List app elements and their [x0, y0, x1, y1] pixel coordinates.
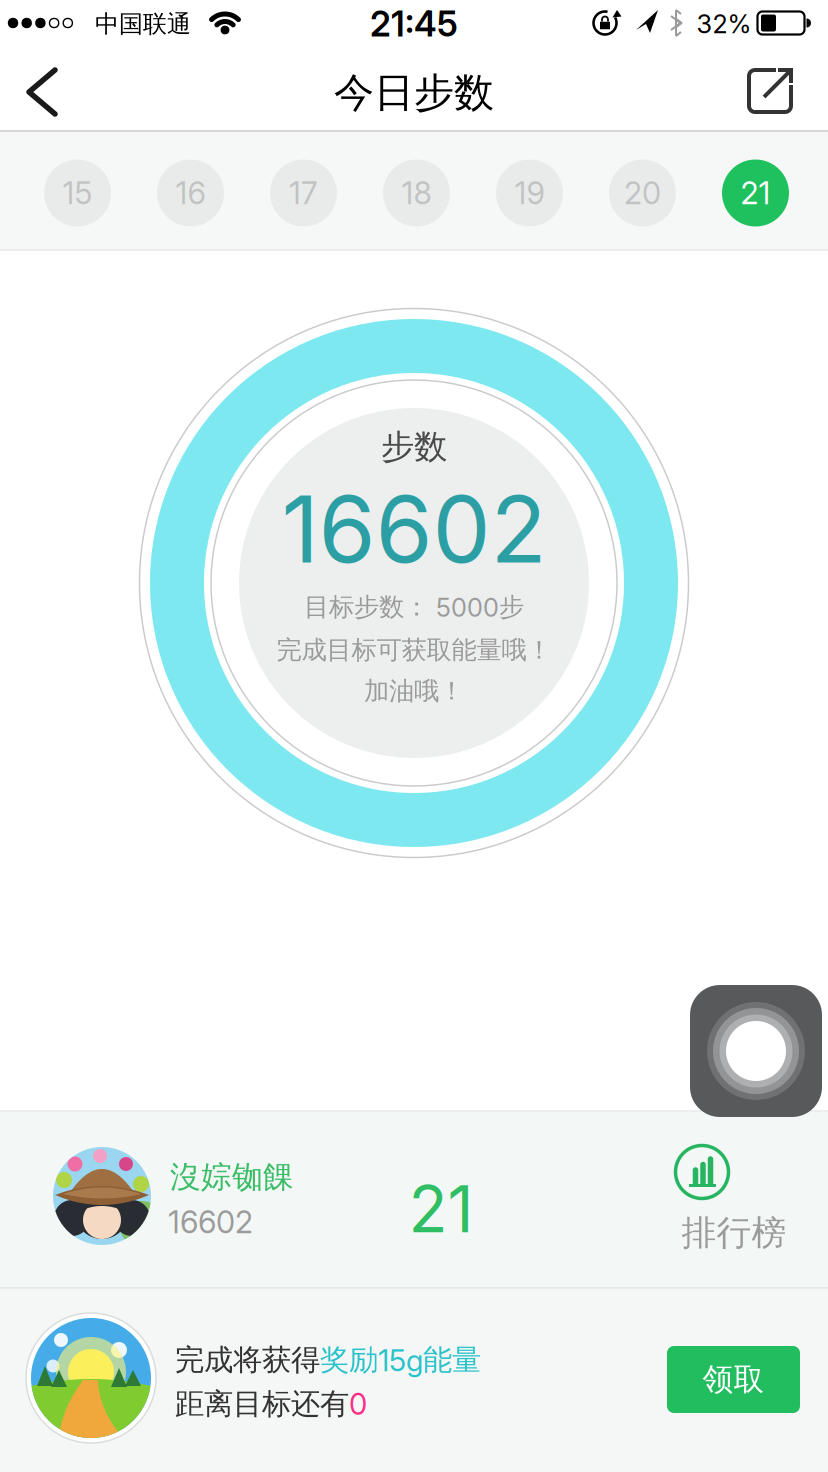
staticText: 排行榜: [681, 1212, 786, 1254]
button[interactable]: 19: [496, 159, 563, 226]
staticText: 21:45: [370, 4, 458, 44]
staticText: 奖励15g能量: [320, 1342, 481, 1378]
button[interactable]: [12, 57, 72, 127]
staticText: 19: [514, 175, 544, 211]
staticText: 18: [401, 175, 431, 211]
staticText: 目标步数： 5000步: [304, 591, 524, 622]
staticText: 16602: [281, 475, 546, 583]
button[interactable]: 18: [383, 159, 450, 226]
staticText: 中国联通: [95, 9, 191, 39]
staticText: 步数: [381, 426, 447, 467]
staticText: 20: [624, 175, 661, 211]
button[interactable]: 20: [609, 159, 676, 226]
button[interactable]: 领取: [667, 1346, 800, 1413]
staticText: 今日步数: [334, 68, 494, 117]
staticText: 17: [289, 175, 318, 211]
button[interactable]: [738, 59, 802, 123]
staticText: 15: [62, 175, 92, 211]
button[interactable]: 排行榜: [640, 1112, 828, 1287]
staticText: 21: [740, 175, 770, 211]
staticText: 完成将获得: [175, 1342, 320, 1378]
staticText: 沒婃铷餜: [170, 1158, 294, 1196]
button[interactable]: 17: [270, 159, 337, 226]
staticText: 0: [349, 1387, 367, 1421]
staticText: 领取: [702, 1361, 764, 1398]
staticText: 21: [408, 1171, 473, 1247]
staticText: 16: [175, 175, 205, 211]
staticText: 32%: [696, 9, 751, 39]
button[interactable]: 16: [157, 159, 224, 226]
button[interactable]: 21: [722, 159, 789, 226]
staticText: 加油哦！: [364, 675, 464, 706]
button[interactable]: [690, 985, 822, 1117]
staticText: 完成目标可获取能量哦！: [276, 634, 551, 665]
staticText: 16602: [168, 1204, 253, 1240]
staticText: 距离目标还有: [175, 1386, 349, 1422]
button[interactable]: 15: [44, 159, 111, 226]
